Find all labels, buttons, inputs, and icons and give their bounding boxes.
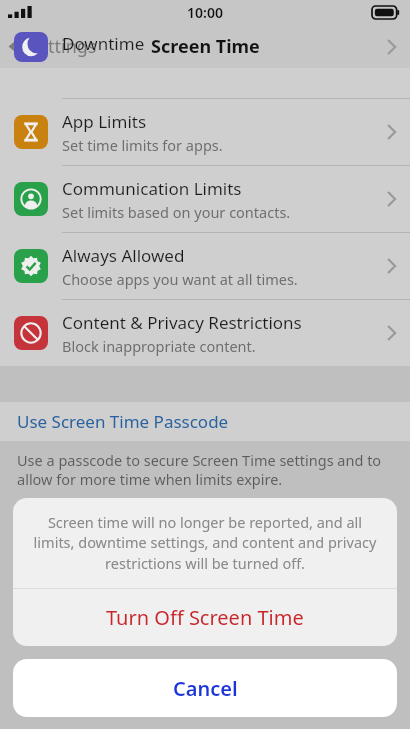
staticText: Set limits based on your contacts. [62, 202, 291, 222]
button[interactable]: Use Screen Time Passcode [0, 402, 410, 441]
staticText: App Limits [62, 110, 147, 133]
button[interactable]: Content & Privacy Restrictions [0, 300, 410, 366]
button[interactable]: Cancel [13, 659, 397, 717]
staticText: Screen Time [151, 34, 260, 59]
staticText: Use a passcode to secure Screen Time set… [17, 450, 393, 489]
staticText: Communication Limits [62, 177, 242, 200]
staticText: Set time limits for apps. [62, 135, 223, 155]
staticText: 10:00 [187, 3, 223, 22]
button[interactable]: App Limits [0, 99, 410, 166]
staticText: Turn Off Screen Time [106, 604, 304, 631]
button[interactable]: Communication Limits [0, 166, 410, 233]
staticText: Screen time will no longer be reported, … [29, 512, 381, 574]
staticText: Choose apps you want at all times. [62, 269, 298, 289]
button[interactable]: Downtime [0, 32, 410, 62]
button[interactable]: Always Allowed [0, 233, 410, 300]
button[interactable]: Turn Off Screen Time [13, 589, 397, 646]
staticText: Block inappropriate content. [62, 336, 256, 356]
staticText: Cancel [173, 675, 238, 702]
staticText: Settings [28, 34, 97, 59]
staticText: Use Screen Time Passcode [17, 410, 229, 433]
staticText: Downtime [62, 32, 145, 55]
button[interactable]: Settings [0, 28, 107, 65]
staticText: Content & Privacy Restrictions [62, 311, 302, 334]
staticText: Always Allowed [62, 244, 185, 267]
